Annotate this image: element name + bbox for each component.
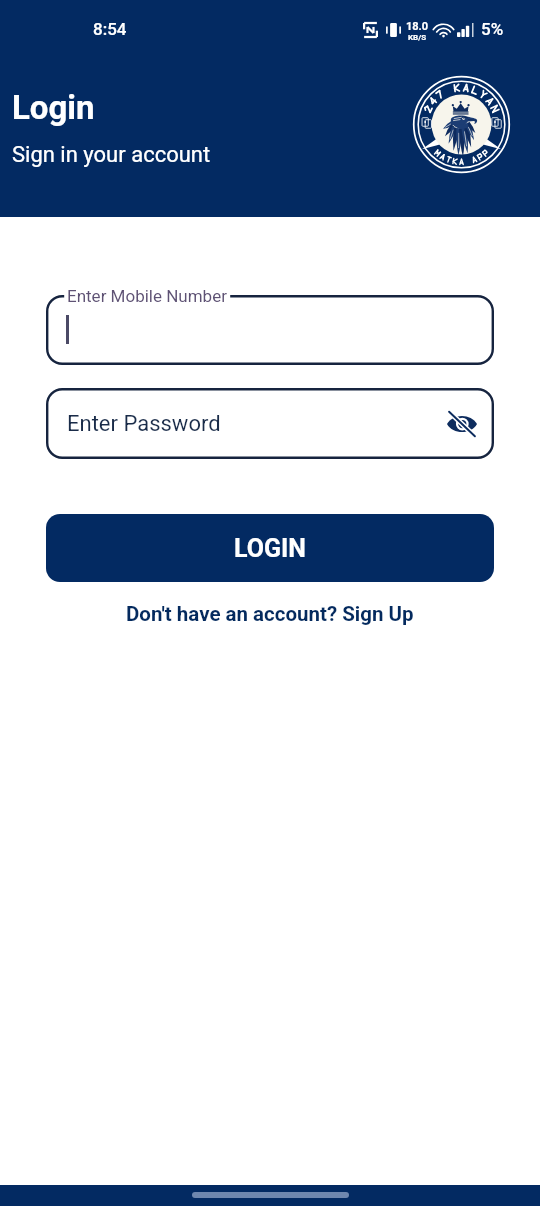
staticText: 8:54 xyxy=(93,19,127,39)
staticText: Enter Mobile Number xyxy=(67,286,227,306)
staticText: LOGIN xyxy=(234,534,306,563)
staticText: Sign in your account xyxy=(12,142,211,168)
staticText: KB/S xyxy=(408,33,427,42)
staticText: 18.0 xyxy=(406,20,429,33)
staticText: Enter Password xyxy=(67,411,221,437)
button[interactable]: Show password xyxy=(444,406,480,442)
button[interactable]: Don't have an account? Sign Up xyxy=(122,598,418,630)
button[interactable]: Enter Password xyxy=(46,388,494,459)
button[interactable]: LOGIN xyxy=(46,514,494,582)
staticText: 5% xyxy=(481,19,504,39)
staticText: Login xyxy=(12,88,95,127)
button[interactable]: Enter Mobile Number xyxy=(46,295,494,365)
